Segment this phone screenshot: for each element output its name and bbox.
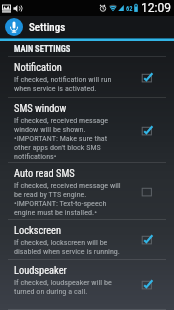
staticText: Settings [29, 21, 66, 33]
staticText: If checked, lockscreen will be [14, 238, 108, 247]
staticText: 62 [126, 5, 133, 12]
staticText: notifications• [14, 152, 57, 161]
staticText: If checked, notification will run [14, 75, 112, 84]
staticText: window will be shown. [14, 125, 86, 134]
staticText: Auto read SMS [14, 168, 75, 179]
button[interactable]: Disabled [140, 185, 154, 199]
staticText: If checked, loudspeaker will be [14, 278, 112, 287]
staticText: •IMPORTANT: Text-to-speech [14, 199, 107, 208]
button[interactable]: Enabled [140, 124, 154, 138]
staticText: •IMPORTANT: Make sure that [14, 134, 108, 143]
button[interactable]: Loudspeaker [0, 260, 174, 310]
staticText: turned on during a call. [14, 287, 88, 296]
staticText: be read by TTS engine. [14, 190, 87, 199]
staticText: Lockscreen [14, 225, 62, 236]
button[interactable]: Auto read SMS [0, 163, 174, 220]
button[interactable]: SMS window [0, 98, 174, 163]
staticText: when service is activated. [14, 84, 97, 93]
button[interactable]: App icon [0, 16, 174, 38]
button[interactable]: Enabled [140, 278, 154, 292]
staticText: Loudspeaker [14, 265, 67, 276]
staticText: SMS window [14, 103, 67, 114]
staticText: If checked, received message [14, 116, 109, 125]
staticText: If checked, received message will [14, 181, 121, 190]
staticText: other apps don't block SMS [14, 143, 101, 152]
button[interactable]: Enabled [140, 233, 154, 247]
staticText: MAIN SETTINGS [14, 45, 71, 54]
staticText: disabled when service is running. [14, 247, 120, 256]
button[interactable]: Enabled [140, 71, 154, 85]
button[interactable]: Notification [0, 57, 174, 98]
staticText: engine must be installed.• [14, 208, 97, 217]
staticText: 12:09 [141, 1, 171, 15]
other: App icon [5, 18, 23, 36]
staticText: Notification [14, 62, 62, 73]
button[interactable]: Lockscreen [0, 220, 174, 260]
